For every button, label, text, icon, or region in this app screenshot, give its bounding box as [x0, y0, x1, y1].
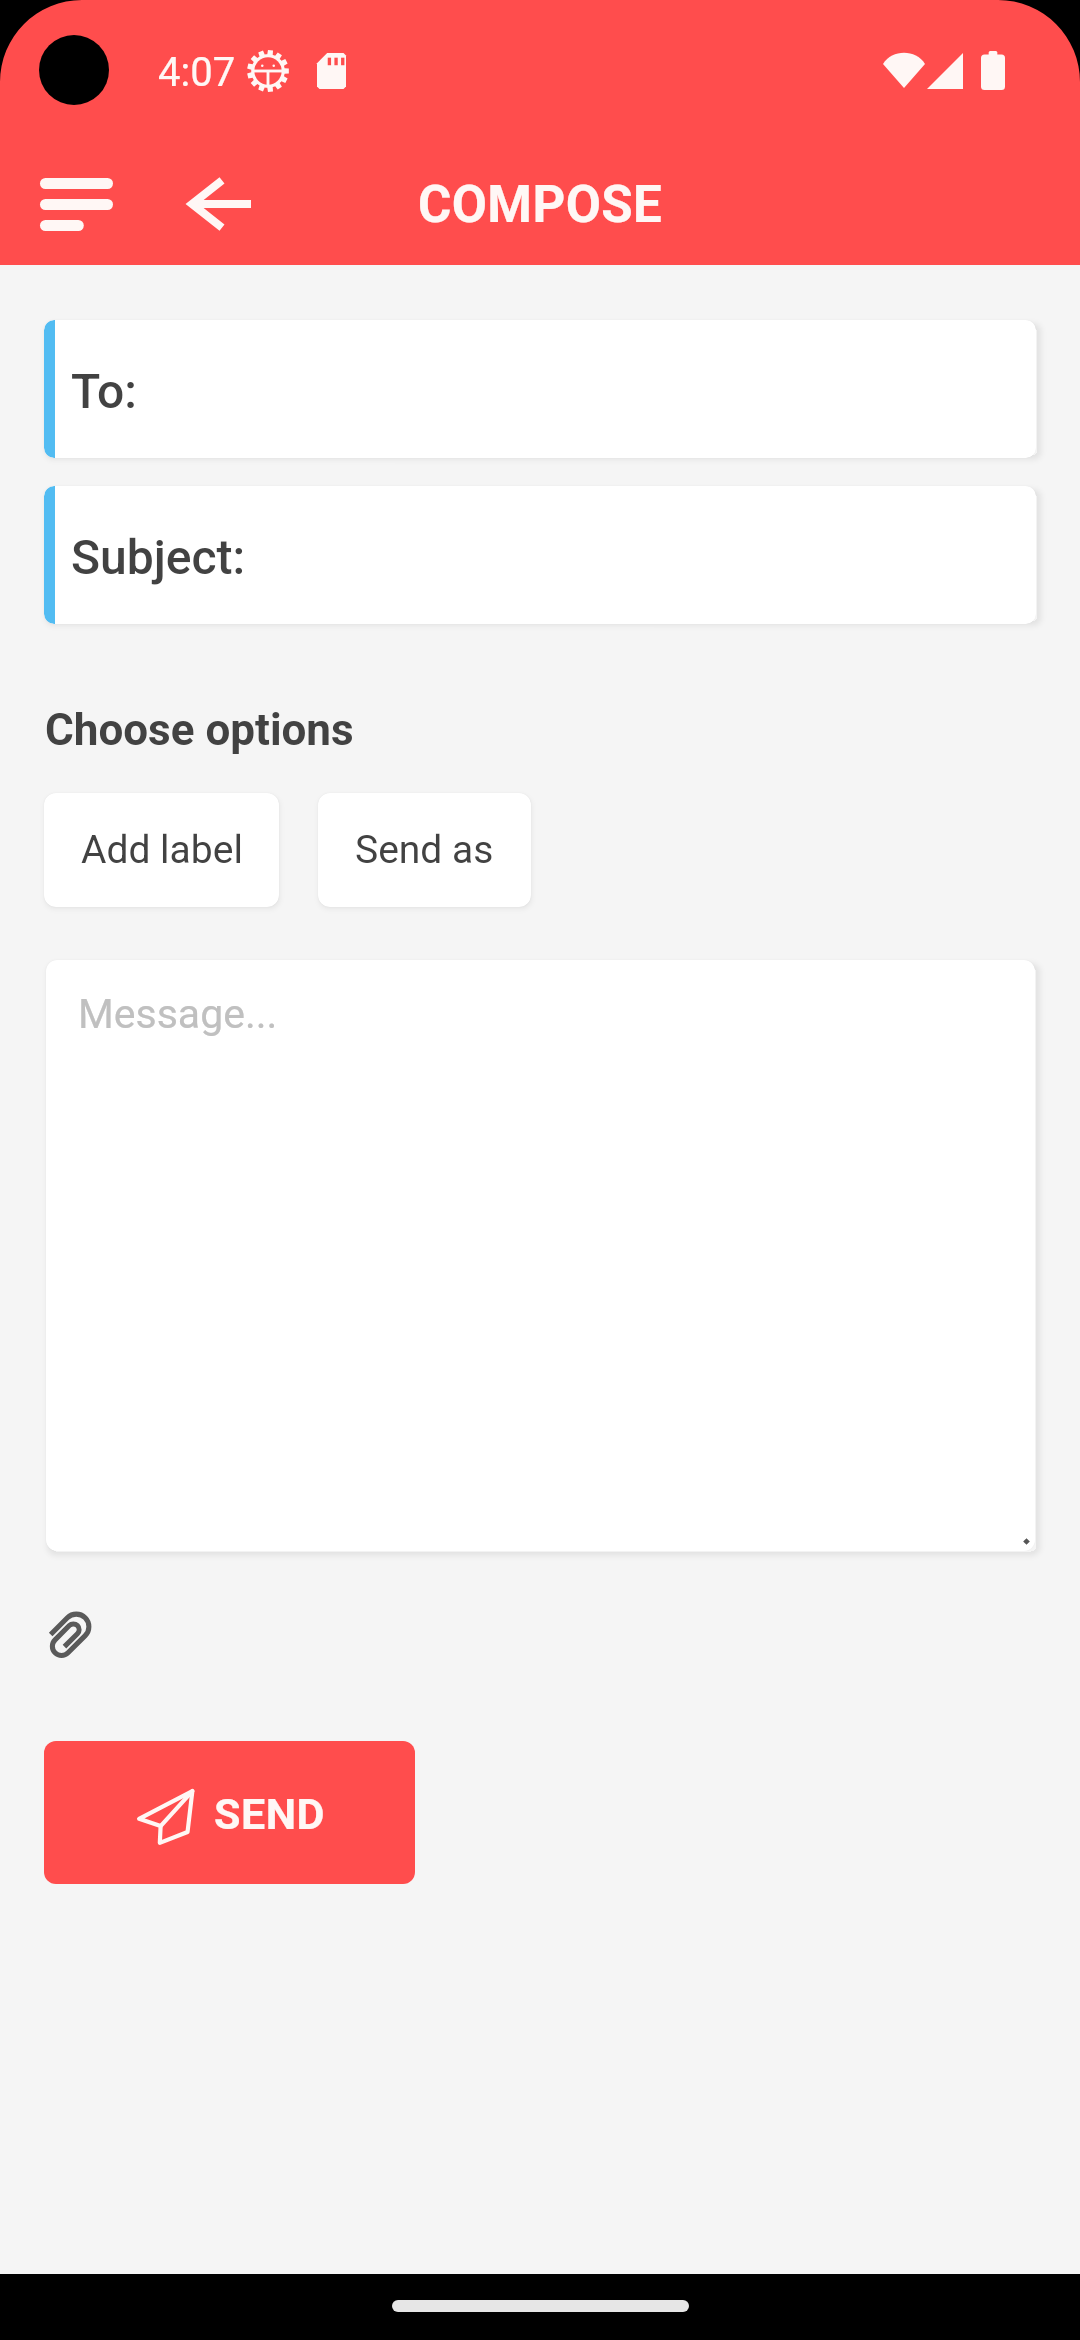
- staticText: Send as: [355, 827, 494, 873]
- button[interactable]: Subject:: [44, 486, 1036, 624]
- staticText: 4:07: [158, 49, 236, 96]
- button[interactable]: Navigate back: [160, 147, 276, 263]
- button[interactable]: Attach file: [23, 1589, 114, 1680]
- button[interactable]: Open navigation menu: [10, 148, 143, 261]
- button[interactable]: SEND: [44, 1741, 415, 1884]
- button[interactable]: Message...: [46, 960, 1035, 1551]
- button[interactable]: To:: [44, 320, 1036, 458]
- staticText: Add label: [81, 827, 243, 873]
- staticText: To:: [71, 363, 137, 419]
- button[interactable]: Send as: [318, 793, 531, 907]
- staticText: Subject:: [71, 529, 246, 585]
- staticText: COMPOSE: [418, 175, 663, 235]
- button[interactable]: Add label: [44, 793, 279, 907]
- staticText: SEND: [214, 1789, 325, 1839]
- staticText: Choose options: [45, 704, 354, 756]
- staticText: Message...: [78, 990, 278, 1038]
